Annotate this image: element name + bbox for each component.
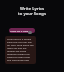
staticText: Write Lyrics to your Songs [0,6,64,16]
staticText: Write me a song about the night sky [10,29,34,32]
button[interactable]: Write me a song about the night sky [9,28,35,33]
button[interactable]: Profile [28,31,32,34]
button[interactable]: Sure! Here is a simple song lyric you ca… [5,36,36,64]
staticText: Sure! Here is a simple song lyric you ca… [7,37,34,61]
